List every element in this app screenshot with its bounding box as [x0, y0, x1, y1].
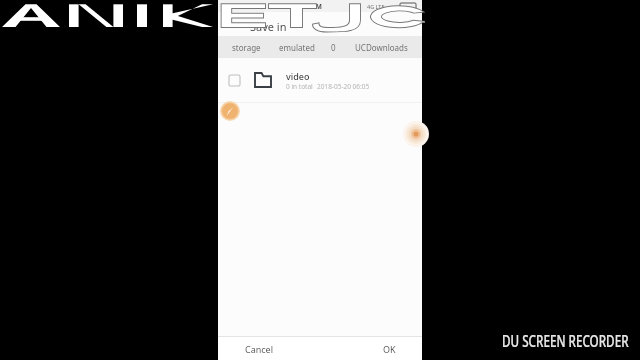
staticText: 0 in total — [286, 82, 313, 91]
button[interactable]: emulated — [279, 41, 315, 54]
button[interactable] — [218, 12, 422, 36]
button[interactable]: UCDownloads — [355, 41, 408, 54]
staticText: video — [286, 70, 310, 82]
button[interactable]: Select video folder — [229, 75, 240, 86]
button[interactable]: 0 — [331, 41, 336, 54]
staticText: OK — [383, 343, 396, 355]
button[interactable]: storage — [232, 41, 261, 54]
button[interactable]: Edit — [220, 101, 240, 121]
staticText: 4G LTE — [367, 3, 385, 10]
staticText: 2018-05-20 06:05 — [317, 82, 370, 91]
staticText: 1:03 PM — [297, 2, 322, 11]
button[interactable]: Cancel — [226, 337, 292, 360]
staticText: 0 — [331, 42, 336, 53]
staticText: Save in — [250, 19, 287, 34]
button[interactable] — [218, 59, 422, 102]
button[interactable]: OK — [356, 337, 422, 360]
staticText: UCDownloads — [355, 42, 408, 53]
staticText: Cancel — [245, 343, 274, 355]
staticText: emulated — [279, 42, 315, 53]
staticText: storage — [232, 42, 261, 53]
